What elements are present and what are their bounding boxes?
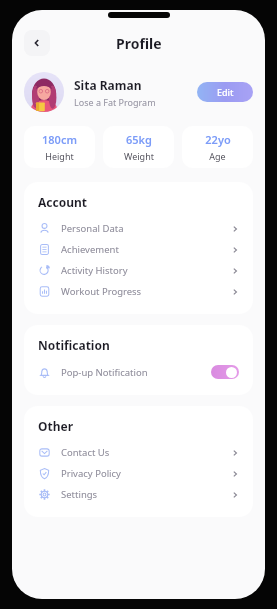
button[interactable]: Personal Data bbox=[38, 218, 239, 239]
staticText: Pop-up Notification bbox=[61, 366, 211, 379]
staticText: Account bbox=[38, 194, 87, 210]
button[interactable]: Workout Progress bbox=[38, 281, 239, 302]
button[interactable]: Contact Us bbox=[38, 442, 239, 463]
button[interactable]: Settings bbox=[38, 484, 239, 505]
staticText: Edit bbox=[217, 86, 234, 98]
staticText: Contact Us bbox=[61, 446, 231, 459]
staticText: Settings bbox=[61, 488, 231, 501]
button[interactable]: Pop-up Notification toggle bbox=[211, 365, 239, 379]
button[interactable]: Privacy Policy bbox=[38, 463, 239, 484]
staticText: 65kg bbox=[126, 132, 152, 147]
staticText: Height bbox=[45, 150, 74, 162]
staticText: Workout Progress bbox=[61, 285, 231, 298]
staticText: Lose a Fat Program bbox=[74, 96, 156, 108]
staticText: Other bbox=[38, 418, 74, 434]
button[interactable]: Back bbox=[24, 30, 50, 56]
staticText: Achievement bbox=[61, 243, 231, 256]
button[interactable]: Pop-up Notification bbox=[38, 361, 239, 383]
button[interactable]: 180cm bbox=[24, 126, 95, 168]
staticText: Profile bbox=[116, 34, 162, 53]
staticText: 180cm bbox=[42, 132, 77, 147]
staticText: 22yo bbox=[205, 132, 231, 147]
staticText: Personal Data bbox=[61, 222, 231, 235]
button[interactable]: Activity History bbox=[38, 260, 239, 281]
button[interactable]: 22yo bbox=[182, 126, 253, 168]
staticText: Activity History bbox=[61, 264, 231, 277]
button[interactable]: Achievement bbox=[38, 239, 239, 260]
button[interactable]: 65kg bbox=[103, 126, 174, 168]
staticText: Sita Raman bbox=[74, 77, 142, 93]
staticText: Privacy Policy bbox=[61, 467, 231, 480]
staticText: Age bbox=[209, 150, 226, 162]
staticText: Notification bbox=[38, 337, 110, 353]
button[interactable]: Edit bbox=[197, 82, 253, 102]
staticText: Weight bbox=[124, 150, 154, 162]
